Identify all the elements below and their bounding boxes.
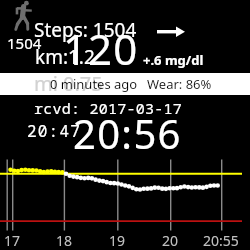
staticText: 20 (162, 231, 179, 250)
staticText: 0 minutes ago (50, 75, 138, 93)
staticText: 20:47 (27, 120, 82, 142)
staticText: 20:55 (203, 231, 239, 250)
staticText: Steps: 1504 (34, 17, 137, 43)
other: Trend steady (157, 26, 185, 37)
staticText: Wear: 86% (147, 75, 212, 93)
button[interactable]: Steps (14, 0, 34, 31)
button[interactable]: mi 0.75 (0, 73, 250, 95)
staticText: mi 0.75 (34, 70, 103, 92)
staticText: 18 (56, 231, 73, 250)
staticText: 17 (4, 231, 21, 250)
staticText: 20:56 (73, 106, 182, 160)
staticText: 1504 (7, 33, 42, 53)
staticText: rcvd: 2017-03-17 (34, 98, 183, 118)
staticText: km:1.2 (35, 44, 95, 70)
staticText: +.6 mg/dl (143, 51, 204, 69)
staticText: 120 (63, 20, 139, 77)
staticText: 19 (109, 231, 126, 250)
